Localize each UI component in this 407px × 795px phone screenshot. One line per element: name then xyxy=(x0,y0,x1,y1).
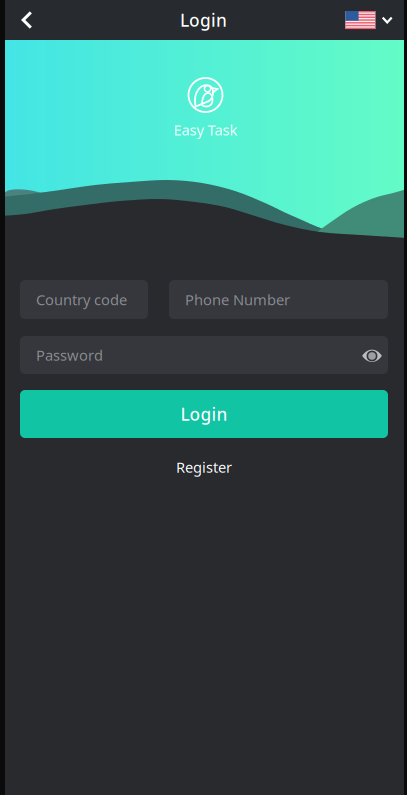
staticText: Password xyxy=(36,345,103,365)
button[interactable]: Show password xyxy=(353,337,391,375)
staticText: Login xyxy=(180,402,227,425)
staticText: Easy Task xyxy=(173,120,237,139)
staticText: Phone Number xyxy=(185,290,290,309)
staticText: Login xyxy=(180,8,227,31)
button[interactable]: Back xyxy=(0,0,48,40)
button[interactable]: Register xyxy=(20,453,388,481)
button[interactable]: Login xyxy=(20,390,388,438)
staticText: Register xyxy=(176,457,232,477)
button[interactable]: Select language xyxy=(345,0,407,40)
staticText: Country code xyxy=(36,290,127,309)
